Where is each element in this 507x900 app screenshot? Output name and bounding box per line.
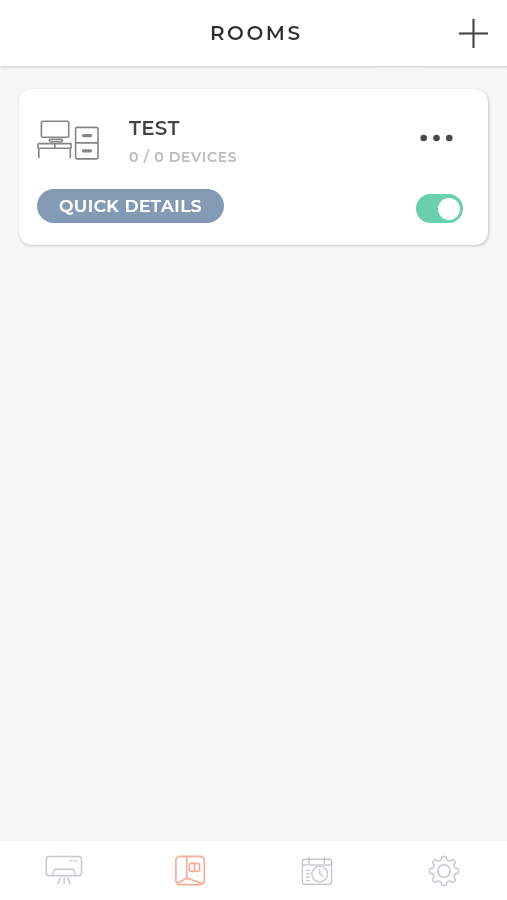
button[interactable]: QUICK DETAILS — [37, 189, 224, 223]
button[interactable]: Air conditioning — [0, 841, 126, 900]
button[interactable]: Rooms — [126, 841, 253, 900]
staticText: 0 / 0 DEVICES — [129, 148, 238, 165]
button[interactable]: Settings — [380, 841, 507, 900]
staticText: ROOMS — [210, 21, 303, 45]
button[interactable]: Room power toggle — [416, 194, 463, 223]
button[interactable]: Add room — [450, 10, 496, 56]
staticText: QUICK DETAILS — [59, 196, 202, 217]
button[interactable]: TEST — [19, 89, 488, 245]
button[interactable]: More options — [413, 125, 459, 151]
button[interactable]: Schedules — [253, 841, 380, 900]
staticText: TEST — [129, 116, 180, 140]
